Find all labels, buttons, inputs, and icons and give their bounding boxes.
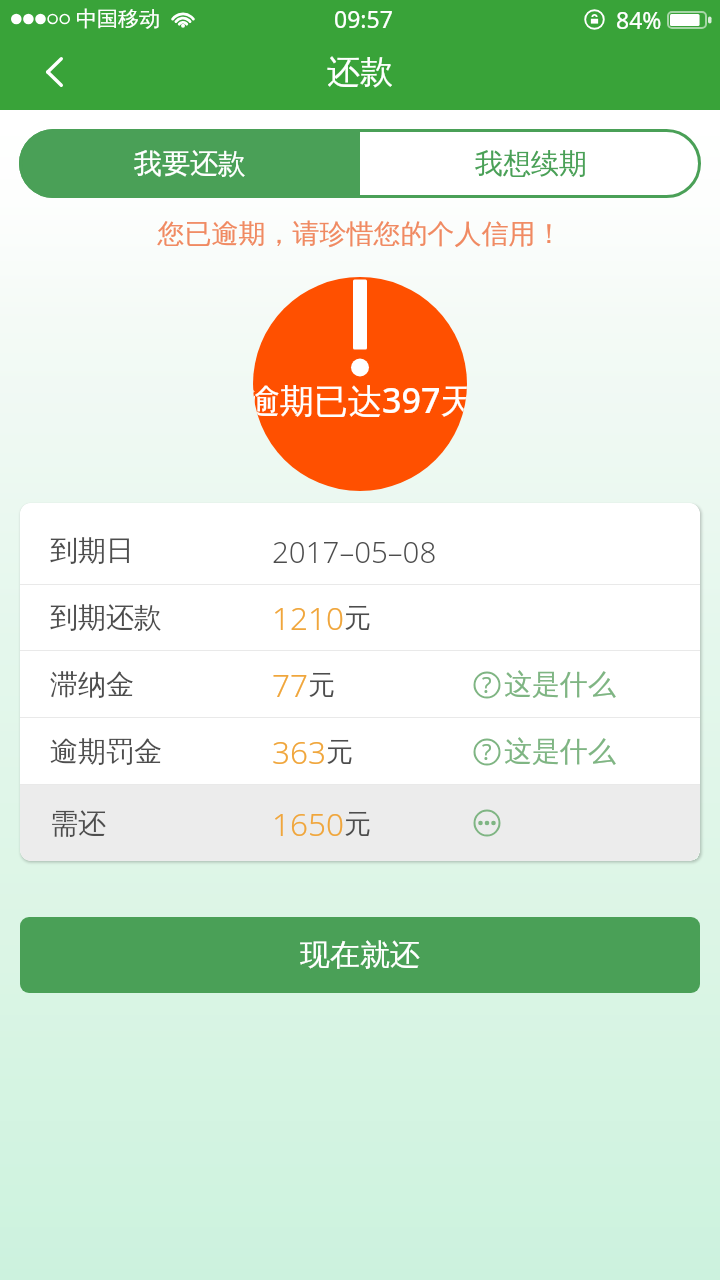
staticText: 需还 [50, 806, 106, 841]
staticText: 2017–05–08 [272, 531, 437, 571]
button[interactable]: 我想续期 [360, 129, 701, 198]
button[interactable]: 到期日 [20, 503, 700, 584]
button[interactable]: Back [19, 40, 89, 110]
staticText: 1210 [272, 596, 344, 639]
staticText: 元 [344, 807, 371, 841]
staticText: ? [482, 736, 492, 766]
staticText: 我要还款 [134, 146, 246, 181]
staticText: 77 [272, 663, 308, 706]
staticText: 还款 [327, 51, 393, 93]
staticText: 滞纳金 [50, 667, 134, 702]
button[interactable]: ? [470, 667, 616, 702]
staticText: 这是什么 [504, 667, 616, 702]
button[interactable]: ? [470, 734, 616, 769]
staticText: 中国移动 [76, 6, 160, 32]
staticText: 逾期罚金 [50, 734, 162, 769]
button[interactable]: More [470, 806, 504, 840]
staticText: 到期日 [50, 533, 134, 568]
staticText: 到期还款 [50, 600, 162, 635]
staticText: 元 [326, 735, 353, 769]
staticText: 我想续期 [475, 146, 587, 181]
staticText: 这是什么 [504, 734, 616, 769]
button[interactable]: 逾期罚金 [20, 718, 700, 784]
staticText: 元 [308, 668, 335, 702]
button[interactable]: 现在就还 [20, 917, 700, 993]
staticText: 逾期已达397天 [253, 377, 467, 423]
staticText: 现在就还 [300, 936, 420, 974]
staticText: 元 [344, 601, 371, 635]
staticText: 您已逾期，请珍惜您的个人信用！ [0, 217, 720, 251]
button[interactable]: 滞纳金 [20, 651, 700, 717]
button[interactable]: 我要还款 [19, 129, 360, 198]
button[interactable]: 到期还款 [20, 585, 700, 650]
staticText: 09:57 [334, 3, 393, 34]
button[interactable]: 需还 [20, 785, 700, 861]
staticText: ? [482, 669, 492, 699]
staticText: 363 [272, 730, 326, 773]
staticText: 84% [616, 4, 662, 35]
staticText: 1650 [272, 802, 344, 845]
